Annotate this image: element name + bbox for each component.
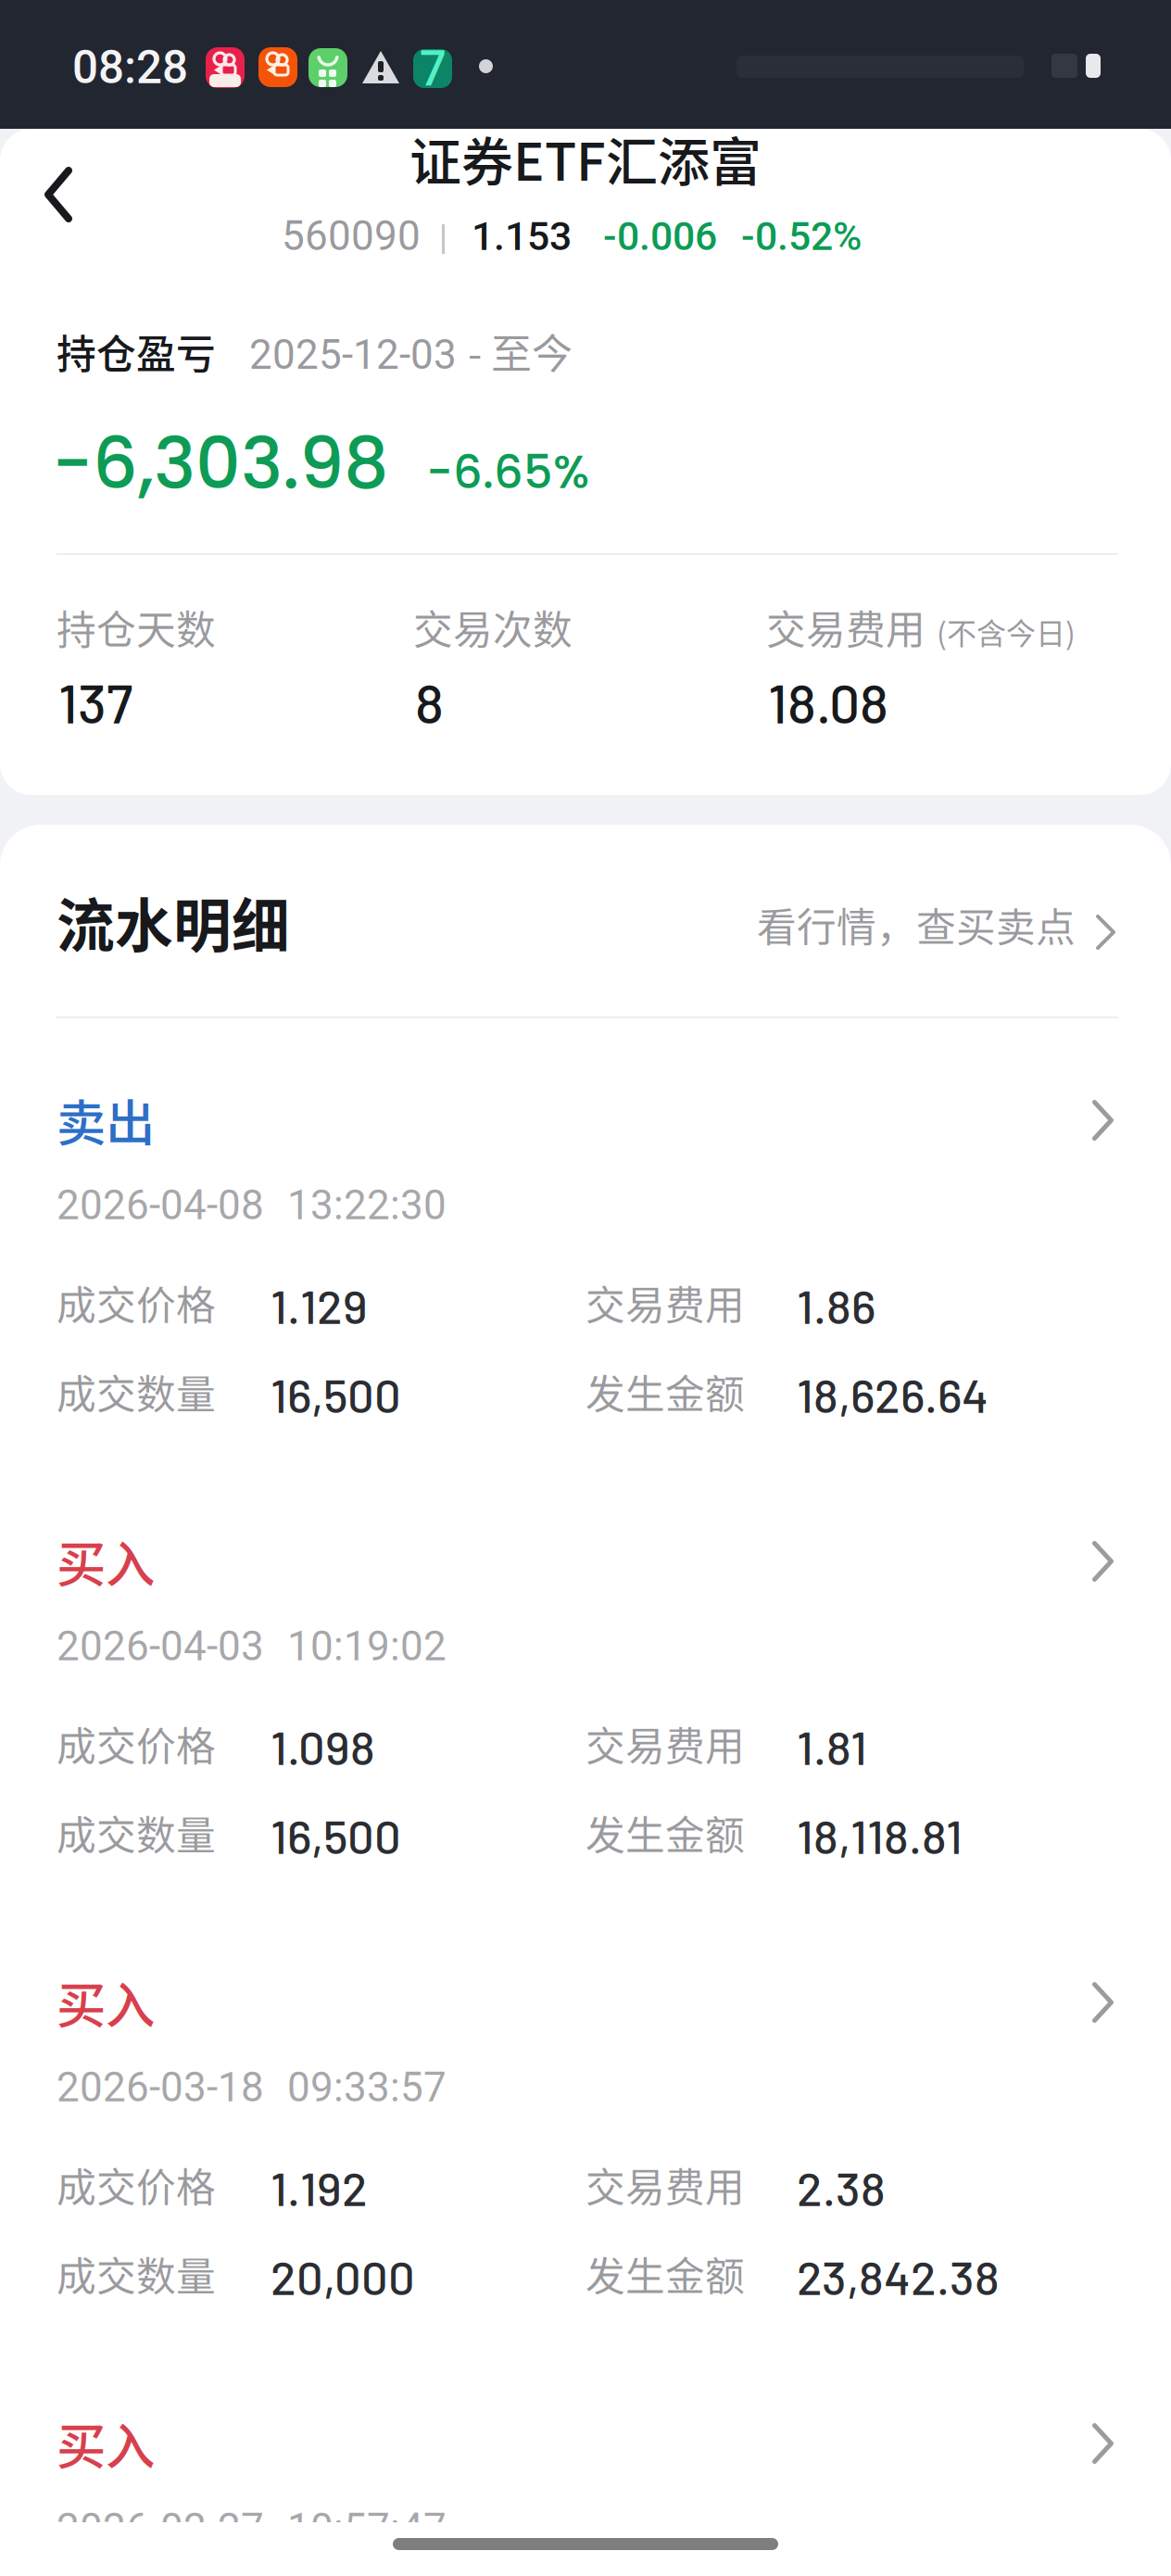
staticText: 18,118.81 (797, 1807, 963, 1863)
staticText: 13:22:30 (287, 1181, 447, 1229)
staticText: 1.86 (797, 1277, 875, 1333)
button[interactable]: 买入 (0, 2407, 1171, 2576)
staticText: 7 (419, 35, 446, 102)
button[interactable]: 买入 (0, 1966, 1171, 2337)
staticText: 发生金额 (585, 1363, 745, 1420)
staticText: -6,303.98 (52, 414, 388, 513)
staticText: 成交数量 (57, 1363, 216, 1420)
staticText: 2026-04-08 (57, 1181, 264, 1229)
button[interactable]: 流水明细 (0, 879, 1171, 991)
staticText: 交易次数 (413, 599, 573, 656)
staticText: -6.65% (426, 440, 589, 504)
staticText: 交易费用 (585, 1715, 745, 1772)
staticText: 10:57:47 (287, 2505, 447, 2552)
staticText: 成交数量 (57, 2245, 216, 2302)
staticText: 卖出 (57, 1084, 155, 1156)
staticText: 16,500 (271, 1366, 401, 1422)
staticText: 交易费用 (585, 1274, 745, 1331)
staticText: 成交价格 (57, 1715, 216, 1772)
staticText: 2.38 (797, 2159, 886, 2215)
staticText: 买入 (57, 1525, 155, 1597)
staticText: 买入 (57, 2407, 155, 2479)
staticText: 09:33:57 (287, 2064, 447, 2111)
staticText: 18.08 (768, 669, 888, 734)
staticText: 23,842.38 (797, 2248, 1000, 2304)
staticText: 交易费用 (766, 599, 925, 656)
button[interactable]: 买入 (0, 1525, 1171, 1896)
staticText: 2026-04-03 (57, 1623, 264, 1670)
staticText: - 至今 (468, 322, 573, 381)
staticText: 1.098 (271, 1718, 375, 1774)
staticText: 发生金额 (585, 1804, 745, 1861)
staticText: 看行情，查买卖点 (757, 896, 1076, 953)
staticText: (不含今日) (937, 610, 1076, 653)
staticText: 持仓天数 (57, 599, 216, 656)
staticText: 证券ETF汇添富 (409, 120, 762, 196)
staticText: 08:28 (72, 41, 188, 94)
staticText: 20,000 (271, 2248, 415, 2304)
staticText: 137 (58, 669, 132, 734)
staticText: 流水明细 (57, 879, 290, 963)
button[interactable]: 卖出 (0, 1084, 1171, 1455)
staticText: 成交价格 (57, 1274, 216, 1331)
staticText: 成交数量 (57, 1804, 216, 1861)
staticText: 交易费用 (585, 2156, 745, 2214)
staticText: 买入 (57, 1966, 155, 2038)
staticText: 持仓盈亏 (57, 323, 216, 380)
staticText: -0.52% (741, 213, 862, 260)
staticText: 2026-02-27 (57, 2505, 264, 2552)
staticText: 发生金额 (585, 2245, 745, 2302)
staticText: 1.153 (472, 213, 572, 260)
staticText: 1.192 (271, 2159, 368, 2215)
staticText: 2026-03-18 (57, 2064, 264, 2111)
button[interactable]: Back (0, 137, 157, 252)
staticText: 1.81 (797, 1718, 867, 1774)
staticText: 2025-12-03 (249, 331, 457, 379)
staticText: 560090 (282, 212, 421, 260)
staticText: 18,626.64 (797, 1366, 988, 1422)
staticText: 1.129 (271, 1277, 368, 1333)
staticText: 16,500 (271, 1807, 401, 1863)
staticText: -0.006 (603, 213, 717, 260)
staticText: 成交价格 (57, 2156, 216, 2214)
staticText: 10:19:02 (287, 1623, 447, 1670)
staticText: 8 (415, 669, 444, 734)
